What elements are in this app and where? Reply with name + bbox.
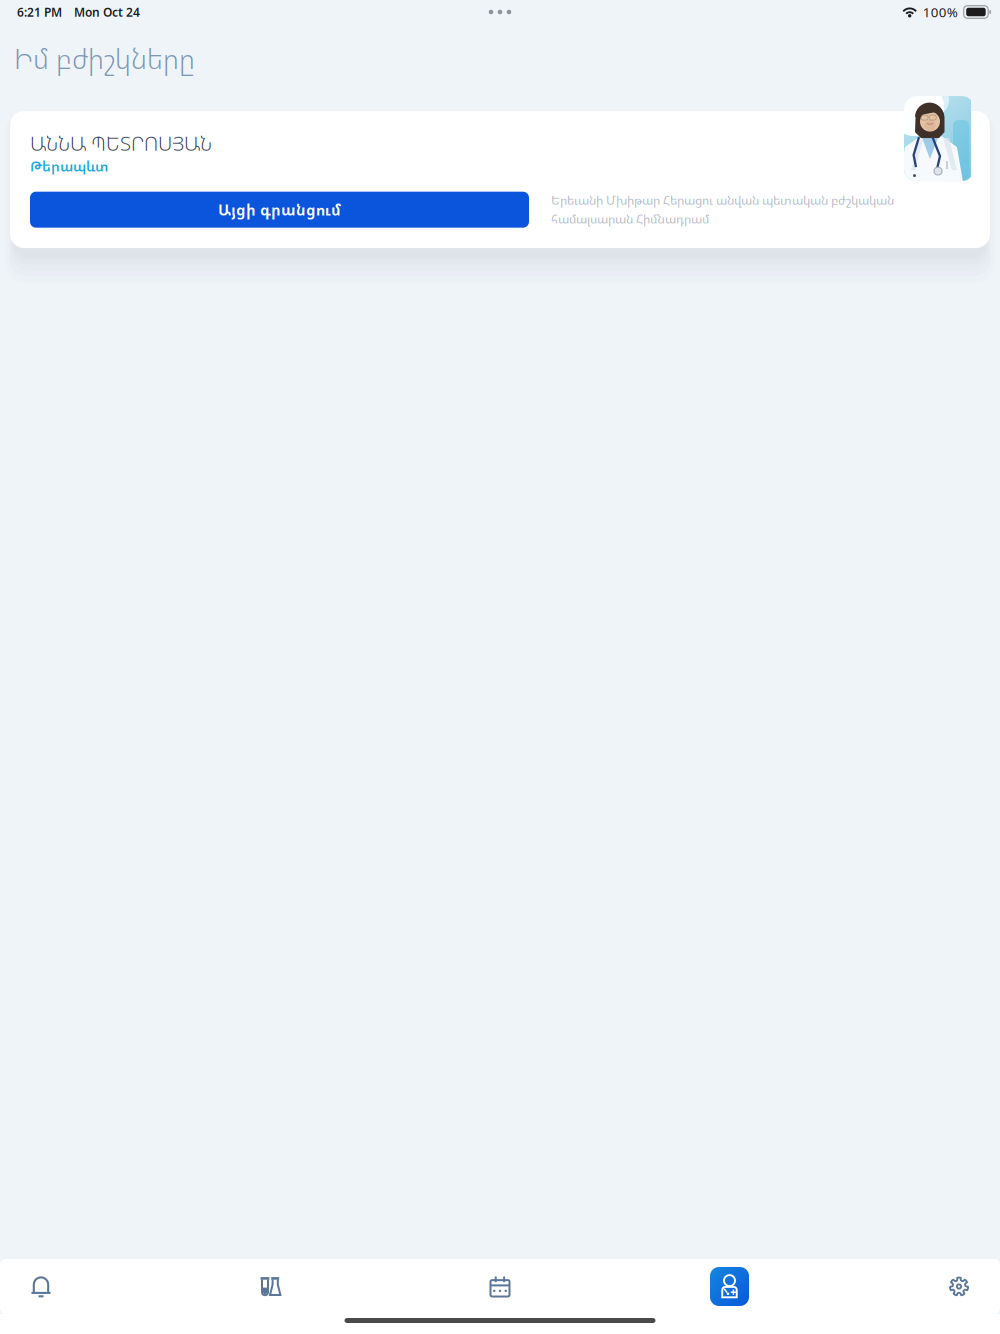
staticText: Այցի գրանցում bbox=[218, 199, 341, 220]
staticText: 100% bbox=[923, 3, 958, 21]
staticText: համալսարան Հիմնադրամ bbox=[551, 210, 709, 227]
staticText: ԱՆՆԱ ՊԵՏՐՈՍՅԱՆ bbox=[30, 129, 212, 157]
staticText: Իմ բժիշկները bbox=[14, 39, 195, 77]
staticText: Երեւանի Մխիթար Հերացու անվան պետական բժշ… bbox=[551, 191, 894, 208]
button[interactable]: Settings bbox=[919, 1262, 999, 1310]
staticText: Mon Oct 24 bbox=[74, 4, 140, 20]
button[interactable]: Երեւանի Մխիթար Հերացու անվան պետական բժշ… bbox=[10, 111, 990, 248]
button[interactable]: Notifications bbox=[1, 1262, 81, 1310]
staticText: Թերապևտ bbox=[30, 157, 108, 176]
button[interactable]: Այցի գրանցում bbox=[30, 192, 529, 228]
button[interactable]: Appointments bbox=[460, 1262, 540, 1310]
button[interactable]: Lab results bbox=[230, 1262, 310, 1310]
staticText: 6:21 PM bbox=[17, 4, 62, 20]
button[interactable]: My doctors bbox=[689, 1262, 769, 1310]
